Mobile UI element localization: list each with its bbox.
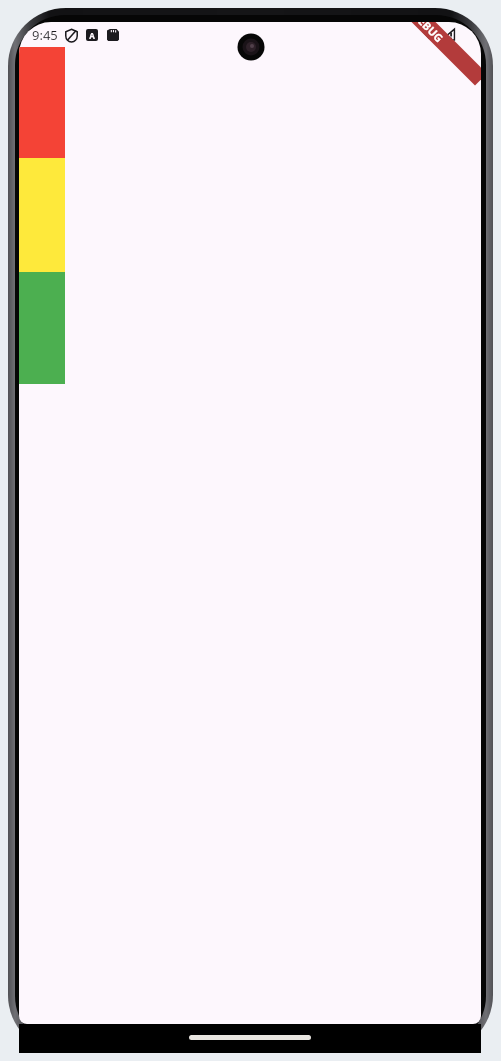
staticText: DEBUG	[409, 22, 447, 45]
staticText: 9:45	[32, 26, 58, 44]
staticText: A	[89, 30, 95, 41]
button[interactable]: Home	[189, 1035, 311, 1040]
